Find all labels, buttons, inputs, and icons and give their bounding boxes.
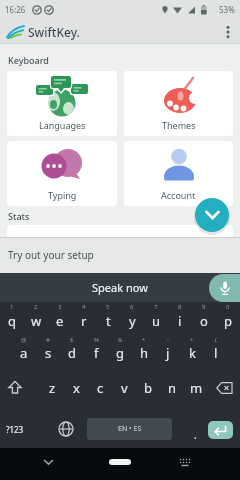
staticText: @ [21,336,27,344]
staticText: 8 [178,303,182,311]
button[interactable] [38,452,58,472]
staticText: Stats [8,210,30,222]
button[interactable] [208,421,233,439]
staticText: d [68,344,76,362]
staticText: u [152,312,161,330]
staticText: SwiftKey. [28,24,80,40]
button[interactable] [209,274,240,302]
staticText: v [121,379,128,397]
button[interactable]: EN • ES [87,418,172,440]
staticText: 53% [219,4,235,15]
button[interactable]: 1 [0,302,24,333]
button[interactable]: # [36,333,60,369]
staticText: # [46,336,50,344]
button[interactable]: Account [124,141,233,206]
button[interactable]: @ [12,333,36,369]
staticText: l [214,344,218,362]
staticText: k [189,344,196,362]
staticText: + [190,336,194,344]
staticText: j [166,344,170,362]
staticText: Keyboard [8,54,49,66]
button[interactable] [208,369,240,406]
staticText: f [94,344,99,362]
staticText: y [129,312,136,330]
button[interactable]: n [160,369,184,406]
button[interactable] [109,459,131,465]
staticText: Speak now [92,280,148,295]
staticText: & [118,336,123,344]
button[interactable] [52,408,80,450]
staticText: e [56,312,64,330]
button[interactable]: * [132,333,156,369]
button[interactable]: z [40,369,64,406]
button[interactable]: c [88,369,112,406]
staticText: 2 [34,303,38,311]
button[interactable]: b [136,369,160,406]
staticText: a [20,344,28,362]
staticText: ( [215,336,217,344]
staticText: p [224,312,232,330]
button[interactable]: + [180,333,204,369]
button[interactable]: & [108,333,132,369]
staticText: 1 [10,303,14,311]
staticText: q [8,312,16,330]
button[interactable] [175,452,195,472]
button[interactable]: m [184,369,208,406]
staticText: n [168,379,177,397]
staticText: 0 [226,303,230,311]
button[interactable]: ( [204,333,228,369]
staticText: c [97,379,104,397]
button[interactable] [216,19,240,44]
button[interactable]: x [64,369,88,406]
staticText: ?123 [6,424,24,435]
staticText: % [94,336,99,344]
button[interactable]: - [156,333,180,369]
staticText: b [144,379,152,397]
staticText: o [200,312,208,330]
staticText: 9 [202,303,206,311]
button[interactable]: 2 [24,302,48,333]
button[interactable]: 3 [48,302,72,333]
button[interactable]: 0 [216,302,240,333]
staticText: - [167,336,169,344]
staticText: s [45,344,52,362]
staticText: g [116,344,124,362]
staticText: $ [70,336,74,344]
staticText: EN • ES [118,424,142,434]
button[interactable]: Languages [7,71,117,136]
staticText: 16:26 [5,4,26,15]
button[interactable]: 6 [120,302,144,333]
staticText: Account [161,189,196,201]
button[interactable]: 9 [192,302,216,333]
staticText: Typing [48,189,77,201]
staticText: i [178,312,182,330]
staticText: m [190,379,203,397]
staticText: Languages [39,119,86,131]
button[interactable]: $ [60,333,84,369]
staticText: h [140,344,149,362]
staticText: 6 [130,303,134,311]
button[interactable]: Typing [7,141,117,206]
button[interactable]: 4 [72,302,96,333]
staticText: 7 [154,303,158,311]
staticText: w [31,312,42,330]
staticText: z [49,379,56,397]
button[interactable] [0,369,40,406]
staticText: 4 [82,303,86,311]
staticText: 3 [58,303,62,311]
staticText: r [81,312,87,330]
button[interactable] [195,198,229,232]
button[interactable]: Themes [124,71,233,136]
button[interactable]: v [112,369,136,406]
button[interactable]: ?123 [0,408,30,450]
staticText: Try out your setup [8,248,94,262]
button[interactable]: 5 [96,302,120,333]
staticText: t [106,312,111,330]
staticText: Themes [162,119,196,131]
button[interactable]: 7 [144,302,168,333]
button[interactable]: % [84,333,108,369]
staticText: * [142,336,146,344]
staticText: . [194,428,197,442]
staticText: x [73,379,80,397]
button[interactable]: 8 [168,302,192,333]
